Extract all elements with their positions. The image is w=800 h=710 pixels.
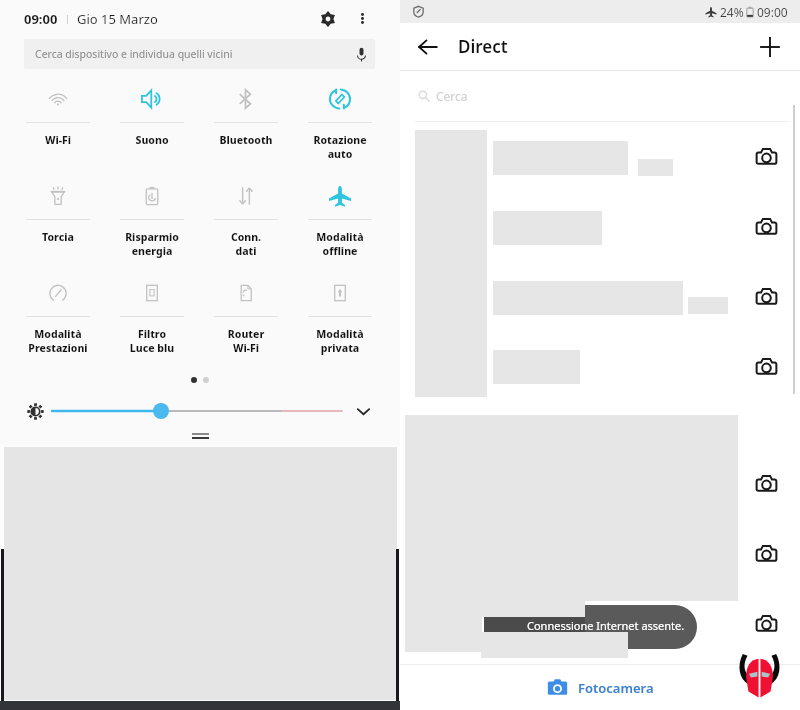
button[interactable]: Rotazione auto: [293, 80, 387, 161]
button[interactable]: Modalità offline: [293, 177, 387, 258]
staticText: Cerca: [436, 88, 468, 104]
staticText: Fotocamera: [578, 679, 654, 697]
button[interactable]: Camera: [750, 608, 782, 640]
staticText: Direct: [458, 35, 508, 58]
button[interactable]: Fotocamera: [546, 676, 654, 699]
staticText: 09:00: [24, 10, 58, 28]
staticText: Gio 15 Marzo: [77, 10, 158, 28]
staticText: 09:00: [757, 4, 788, 20]
button[interactable]: Camera: [750, 141, 782, 173]
button[interactable]: Settings: [316, 7, 340, 31]
staticText: Filtro Luce blu: [105, 327, 199, 355]
button[interactable]: Camera: [750, 538, 782, 570]
button[interactable]: Modalità privata: [293, 274, 387, 355]
button[interactable]: Brightness: [26, 402, 44, 420]
button[interactable]: Risparmio energia: [105, 177, 199, 258]
button[interactable]: Modalità Prestazioni: [11, 274, 105, 355]
staticText: Connessione Internet assente.: [527, 618, 685, 633]
button[interactable]: Camera: [750, 211, 782, 243]
staticText: Wi-Fi: [11, 133, 105, 147]
button[interactable]: [485, 605, 697, 649]
button[interactable]: Filtro Luce blu: [105, 274, 199, 355]
staticText: Suono: [105, 133, 199, 147]
button[interactable]: Bluetooth: [199, 80, 293, 147]
staticText: Router Wi-Fi: [199, 327, 293, 355]
staticText: Cerca dispositivo e individua quelli vic…: [35, 47, 233, 61]
staticText: 24%: [720, 4, 744, 20]
staticText: Risparmio energia: [105, 230, 199, 258]
button[interactable]: Router Wi-Fi: [199, 274, 293, 355]
staticText: Modalità privata: [293, 327, 387, 355]
button[interactable]: Camera: [750, 468, 782, 500]
staticText: Conn. dati: [199, 230, 293, 258]
staticText: Modalità offline: [293, 230, 387, 258]
button[interactable]: Conn. dati: [199, 177, 293, 258]
button[interactable]: Expand: [352, 400, 374, 422]
staticText: Torcia: [11, 230, 105, 244]
button[interactable]: Cerca dispositivo e individua quelli vic…: [24, 39, 375, 69]
button[interactable]: Cerca: [418, 71, 800, 121]
button[interactable]: Wi-Fi: [11, 80, 105, 147]
button[interactable]: More options: [351, 7, 373, 29]
button[interactable]: Back: [412, 31, 444, 63]
staticText: Bluetooth: [199, 133, 293, 147]
staticText: Rotazione auto: [293, 133, 387, 161]
button[interactable]: Torcia: [11, 177, 105, 244]
button[interactable]: Camera: [750, 351, 782, 383]
staticText: Modalità Prestazioni: [11, 327, 105, 355]
button[interactable]: Suono: [105, 80, 199, 147]
button[interactable]: Camera: [750, 281, 782, 313]
button[interactable]: New message: [754, 31, 786, 63]
